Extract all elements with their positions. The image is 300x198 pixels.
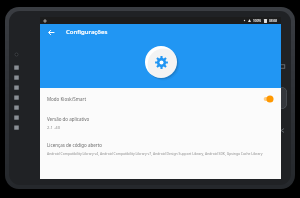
staticText: Licenças de código aberto: [47, 142, 102, 148]
button[interactable]: Versão do aplicativo: [40, 114, 281, 133]
staticText: 2.1 -40: [47, 125, 61, 131]
button[interactable]: Modo Kiosk/Smart: [40, 88, 281, 110]
staticText: Configurações: [66, 28, 108, 36]
button[interactable]: Home: [276, 87, 287, 109]
staticText: Versão do aplicativo: [47, 116, 90, 122]
button[interactable]: Modo Kiosk/Smart toggle: [263, 95, 274, 103]
staticText: Modo Kiosk/Smart: [47, 96, 87, 102]
button[interactable]: Back: [44, 25, 58, 39]
staticText: Android Compatibility Library v4, Androi…: [47, 151, 263, 156]
button[interactable]: Licenças de código aberto: [40, 140, 281, 158]
staticText: 08:58: [269, 19, 278, 23]
staticText: 100%: [253, 19, 262, 23]
